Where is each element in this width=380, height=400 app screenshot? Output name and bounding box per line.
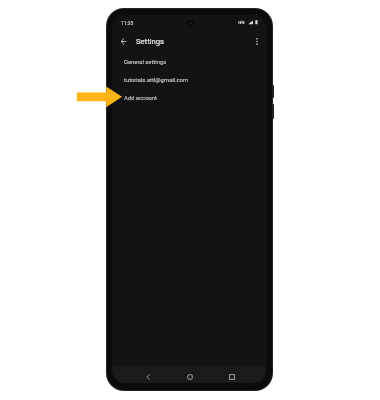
staticText: tutorials.attl@gmail.com	[124, 77, 189, 84]
button[interactable]: tutorials.attl@gmail.com	[112, 71, 266, 89]
button[interactable]: Back	[141, 370, 155, 383]
staticText: Add account	[124, 95, 157, 102]
staticText: 11:35	[121, 20, 134, 26]
button[interactable]: More options	[249, 33, 265, 49]
button[interactable]: Back	[116, 34, 130, 48]
button[interactable]: Home	[183, 370, 197, 383]
staticText: General settings	[124, 59, 167, 66]
staticText: Settings	[136, 37, 165, 46]
button[interactable]: Add account	[112, 89, 266, 107]
button[interactable]: Recents	[225, 370, 239, 383]
button[interactable]: General settings	[112, 53, 266, 71]
